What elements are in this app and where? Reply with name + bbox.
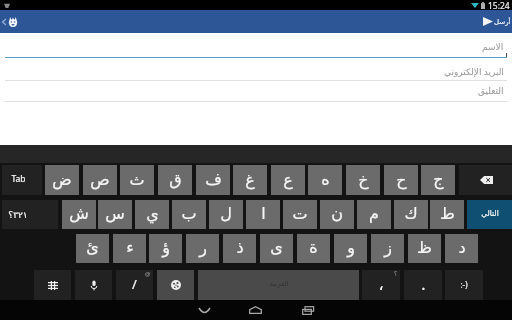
staticText: / xyxy=(132,275,137,293)
button[interactable]: ش xyxy=(62,200,96,229)
button[interactable]: ؟ xyxy=(362,270,400,300)
staticText: ن xyxy=(331,204,343,223)
staticText: ج xyxy=(433,170,444,189)
staticText: . xyxy=(421,273,426,295)
staticText: 15:24 xyxy=(488,0,510,10)
button[interactable]: غ xyxy=(233,165,267,195)
button[interactable]: ص xyxy=(83,165,117,195)
button[interactable]: د xyxy=(445,234,478,263)
button[interactable]: Recents xyxy=(293,300,322,320)
staticText: ط xyxy=(440,204,455,223)
button[interactable]: Hide keyboard xyxy=(190,300,219,320)
button[interactable]: ط xyxy=(430,200,464,229)
button[interactable]: Navigate up xyxy=(0,10,8,33)
button[interactable]: س xyxy=(98,200,132,229)
button[interactable]: ث xyxy=(120,165,154,195)
staticText: ك xyxy=(404,204,418,223)
staticText: ؟ xyxy=(394,270,398,277)
button[interactable]: التالي xyxy=(467,200,512,229)
button[interactable]: ج xyxy=(421,165,455,195)
staticText: ص xyxy=(90,170,110,189)
button[interactable] xyxy=(34,270,71,300)
staticText: ، xyxy=(378,275,384,294)
staticText: خ xyxy=(358,170,369,189)
staticText: ة xyxy=(309,238,318,257)
button[interactable]: ء xyxy=(113,234,146,263)
staticText: ‭؟٣٢١ xyxy=(8,208,28,220)
staticText: ا xyxy=(261,204,266,223)
button[interactable]: . xyxy=(404,270,442,300)
button[interactable]: ا xyxy=(246,200,280,229)
button[interactable]: الاسم xyxy=(0,40,512,58)
button[interactable]: ت xyxy=(283,200,317,229)
button[interactable]: ب xyxy=(172,200,206,229)
staticText: الاسم xyxy=(482,42,504,52)
button[interactable]: ك xyxy=(394,200,428,229)
staticText: ذ xyxy=(236,238,244,257)
button[interactable]: ئ xyxy=(76,234,109,263)
button[interactable]: ؤ xyxy=(149,234,182,263)
button[interactable]: :-) xyxy=(445,270,483,300)
button[interactable] xyxy=(459,165,512,195)
button[interactable]: ز xyxy=(371,234,404,263)
staticText: ظ xyxy=(417,238,432,257)
staticText: @ xyxy=(145,270,151,278)
button[interactable]: ى xyxy=(260,234,293,263)
staticText: ح xyxy=(396,170,407,189)
button[interactable]: و xyxy=(334,234,367,263)
button[interactable]: م xyxy=(357,200,391,229)
staticText: غ xyxy=(245,170,255,189)
button[interactable]: ل xyxy=(209,200,243,229)
staticText: البريد الإلكتروني xyxy=(444,65,504,77)
staticText: ي xyxy=(146,204,159,223)
staticText: د xyxy=(458,238,466,257)
staticText: ع xyxy=(283,170,293,189)
button[interactable]: ق xyxy=(158,165,192,195)
staticText: ى xyxy=(270,238,283,257)
button[interactable]: ظ xyxy=(408,234,441,263)
button[interactable]: Tab xyxy=(2,165,42,195)
button[interactable] xyxy=(75,270,112,300)
staticText: ه xyxy=(321,170,330,189)
staticText: العربية xyxy=(269,280,289,288)
button[interactable]: ة xyxy=(297,234,330,263)
button[interactable]: ن xyxy=(320,200,354,229)
staticText: ء xyxy=(126,238,134,257)
button[interactable]: خ xyxy=(346,165,380,195)
staticText: ب xyxy=(181,204,197,223)
staticText: ق xyxy=(169,170,182,189)
button[interactable]: ه xyxy=(308,165,342,195)
button[interactable]: ي xyxy=(135,200,169,229)
staticText: ئ xyxy=(86,238,99,257)
staticText: ل xyxy=(220,204,232,223)
button[interactable]: ذ xyxy=(223,234,256,263)
staticText: م xyxy=(369,204,379,223)
button[interactable]: ع xyxy=(271,165,305,195)
staticText: ش xyxy=(69,204,89,223)
button[interactable]: التعليق xyxy=(0,84,512,102)
staticText: ث xyxy=(129,170,145,189)
button[interactable]: ر xyxy=(186,234,219,263)
button[interactable] xyxy=(157,270,194,300)
staticText: التالي xyxy=(481,209,499,218)
button[interactable]: ‭؟٣٢١ xyxy=(2,200,58,229)
button[interactable]: @ xyxy=(116,270,153,300)
staticText: ر xyxy=(199,238,207,257)
button[interactable]: ح xyxy=(384,165,418,195)
button[interactable]: Home xyxy=(241,300,270,320)
button[interactable]: أرسل xyxy=(483,10,511,33)
button[interactable]: ض xyxy=(45,165,79,195)
button[interactable]: البريد الإلكتروني xyxy=(0,63,512,81)
staticText: ض xyxy=(52,170,72,189)
staticText: س xyxy=(105,204,125,223)
staticText: :-) xyxy=(460,279,468,290)
staticText: ت xyxy=(292,204,308,223)
staticText: Tab xyxy=(11,173,26,185)
button[interactable]: ف xyxy=(196,165,230,195)
staticText: أرسل xyxy=(494,18,511,26)
